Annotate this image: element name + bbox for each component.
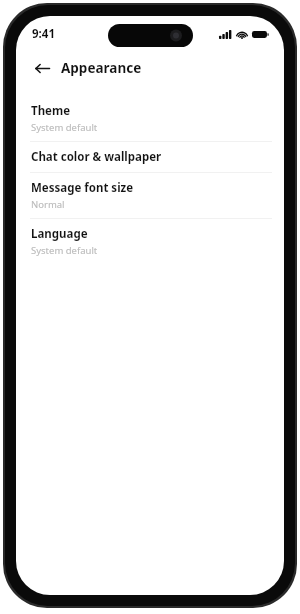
button[interactable]: Back: [31, 57, 53, 79]
staticText: Normal: [31, 198, 65, 211]
staticText: Language: [31, 226, 88, 242]
staticText: Message font size: [31, 180, 134, 196]
button[interactable]: Message font size: [16, 173, 284, 218]
staticText: System default: [31, 244, 98, 257]
staticText: Appearance: [61, 59, 142, 77]
staticText: 9:41: [32, 26, 55, 42]
button[interactable]: Theme: [16, 96, 284, 141]
staticText: Chat color & wallpaper: [31, 149, 162, 165]
button[interactable]: Language: [16, 219, 284, 264]
staticText: System default: [31, 121, 98, 134]
staticText: Theme: [31, 103, 71, 119]
button[interactable]: Chat color & wallpaper: [16, 142, 284, 172]
